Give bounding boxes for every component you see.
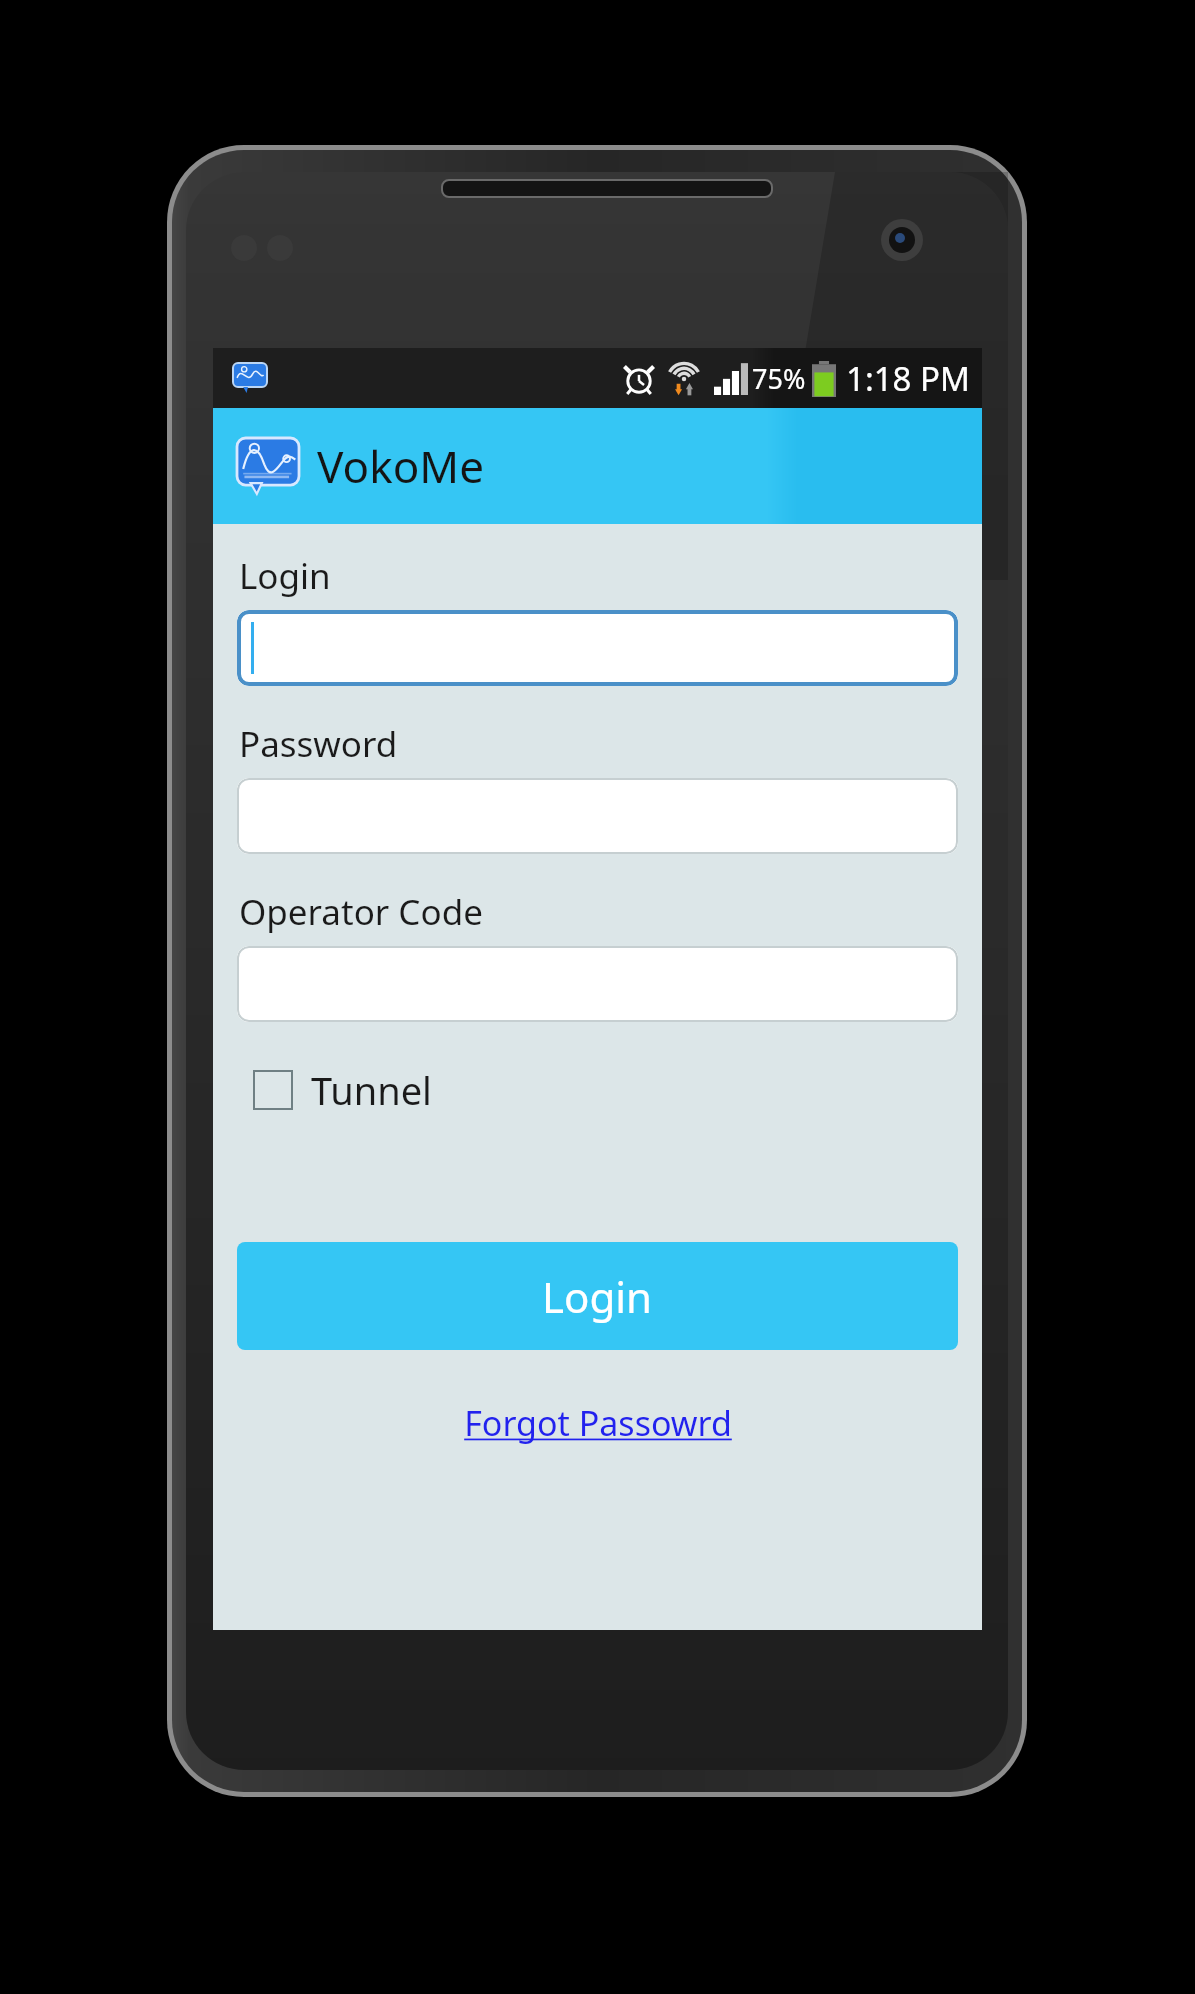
button[interactable]	[237, 778, 958, 854]
staticText: Operator Code	[239, 888, 483, 936]
staticText: VokoMe	[317, 436, 484, 496]
button[interactable]	[237, 946, 958, 1022]
staticText: 75%	[752, 360, 806, 397]
button[interactable]: Login	[237, 1242, 958, 1350]
staticText: 1:18 PM	[846, 356, 970, 401]
staticText: Tunnel	[311, 1064, 432, 1116]
staticText: Login	[239, 552, 331, 600]
button[interactable]: Forgot Passowrd	[454, 1394, 742, 1452]
staticText: Login	[542, 1268, 653, 1325]
button[interactable]	[237, 610, 958, 686]
button[interactable]: Tunnel	[249, 1056, 436, 1124]
staticText: Password	[239, 720, 398, 768]
staticText: Forgot Passowrd	[464, 1400, 732, 1446]
